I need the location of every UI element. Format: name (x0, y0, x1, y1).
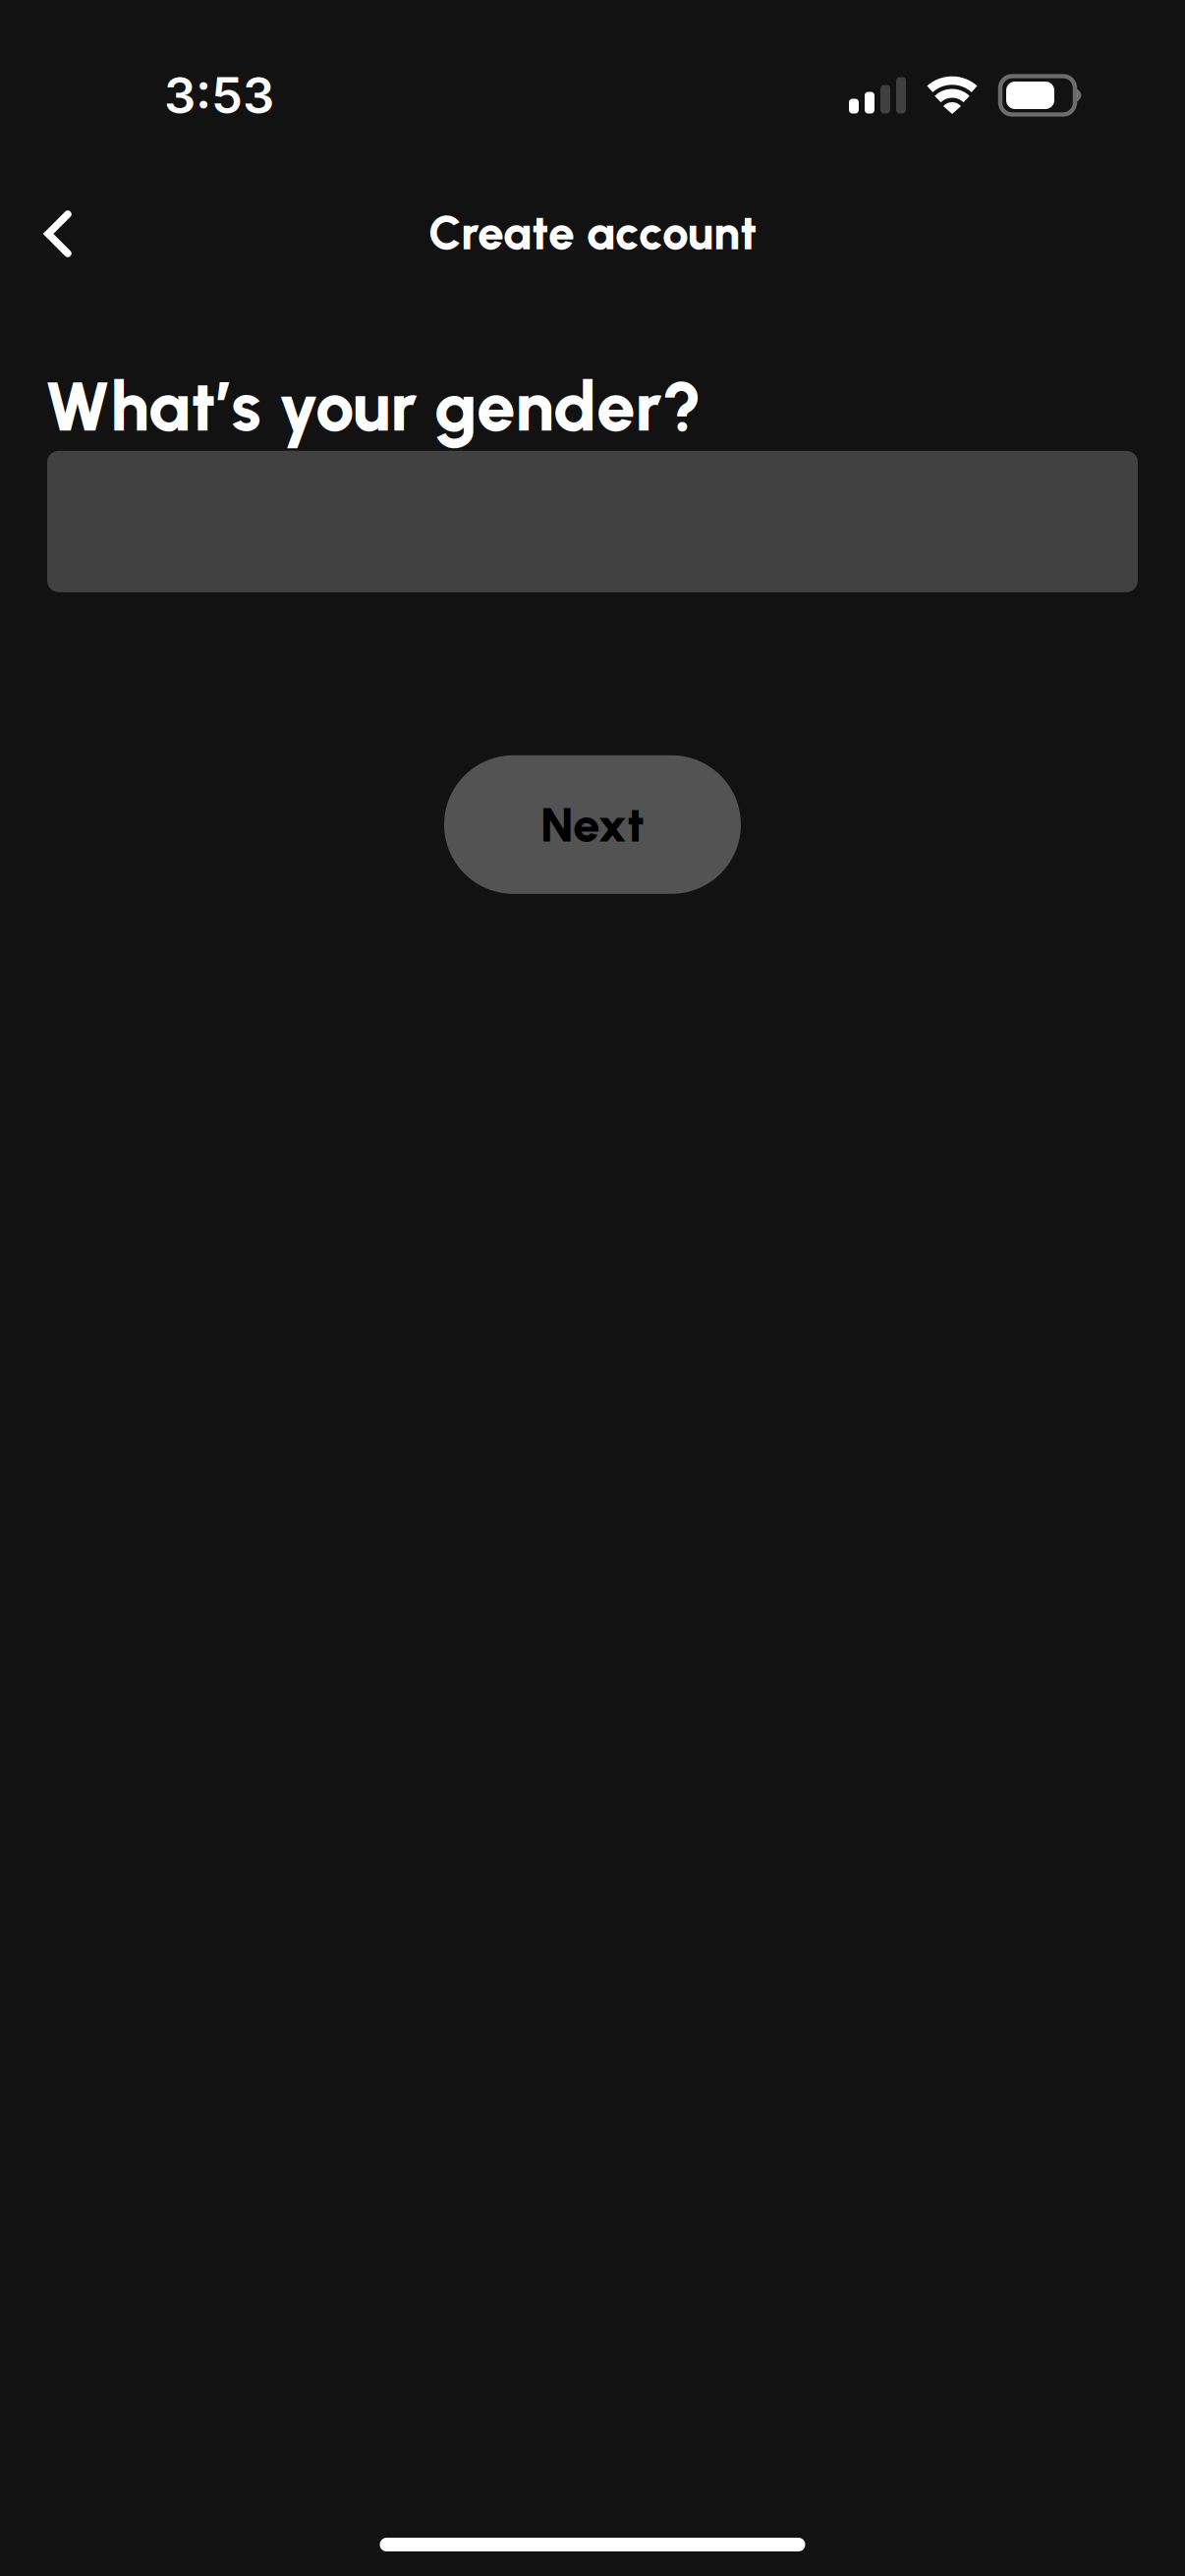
staticText: Create account (428, 205, 757, 261)
button[interactable]: Next (444, 755, 741, 894)
staticText: 3:53 (164, 65, 274, 125)
staticText: Next (540, 795, 645, 854)
button[interactable]: Back (11, 187, 105, 281)
staticText: What’s your gender? (44, 364, 702, 448)
